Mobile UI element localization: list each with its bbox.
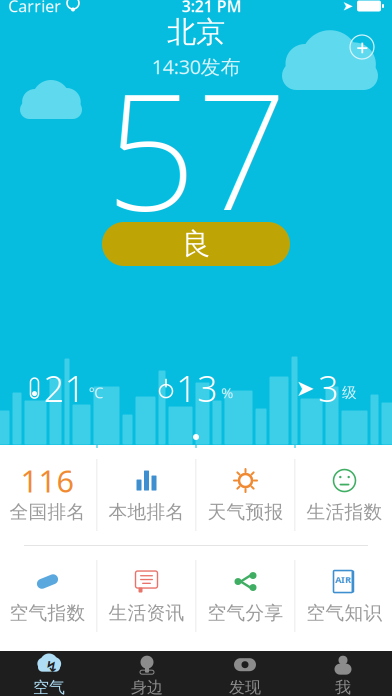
button[interactable]: 本地排名 [97, 445, 195, 545]
staticText: 空气分享 [207, 601, 283, 624]
button[interactable]: 空气指数 [0, 546, 96, 646]
staticText: ➤ [295, 375, 314, 401]
staticText: % [221, 383, 233, 402]
staticText: 空气指数 [9, 601, 85, 624]
button[interactable]: 116 [0, 445, 96, 545]
staticText: AIR [335, 573, 351, 586]
staticText: 空气 [33, 678, 65, 696]
staticText: 我 [335, 678, 351, 696]
button[interactable]: 天气预报 [196, 445, 294, 545]
staticText: 116 [20, 460, 74, 501]
staticText: ℃ [88, 383, 103, 402]
staticText: ↯ [45, 658, 57, 675]
staticText: 生活指数 [306, 500, 382, 523]
staticText: Carrier [8, 0, 61, 17]
button[interactable]: AIR [295, 546, 392, 646]
staticText: + [356, 33, 368, 61]
staticText: 级 [342, 384, 357, 402]
staticText: 空气知识 [306, 601, 382, 624]
staticText: 身边 [131, 678, 163, 696]
button[interactable]: 生活资讯 [97, 546, 195, 646]
button[interactable]: 发现 [196, 651, 294, 696]
staticText: 3 [318, 364, 339, 412]
staticText: ➤ [342, 0, 353, 13]
button[interactable]: 良 [102, 222, 290, 266]
staticText: 21 [43, 364, 85, 412]
button[interactable]: 空气分享 [196, 546, 294, 646]
button[interactable]: 生活指数 [295, 445, 392, 545]
staticText: 北京 [167, 14, 225, 50]
button[interactable]: 我 [294, 651, 392, 696]
button[interactable]: 身边 [98, 651, 196, 696]
staticText: 天气预报 [207, 500, 283, 523]
staticText: 13 [176, 364, 218, 412]
button[interactable]: 添加城市 [340, 25, 384, 69]
staticText: 生活资讯 [108, 601, 184, 624]
staticText: 14:30发布 [151, 53, 240, 80]
button[interactable]: ↯ [0, 651, 98, 696]
staticText: 3:21 PM [181, 0, 241, 17]
staticText: 全国排名 [9, 500, 85, 523]
staticText: 发现 [229, 678, 261, 696]
staticText: 本地排名 [108, 500, 184, 523]
staticText: 良 [181, 226, 210, 262]
staticText: 57 [105, 42, 287, 254]
